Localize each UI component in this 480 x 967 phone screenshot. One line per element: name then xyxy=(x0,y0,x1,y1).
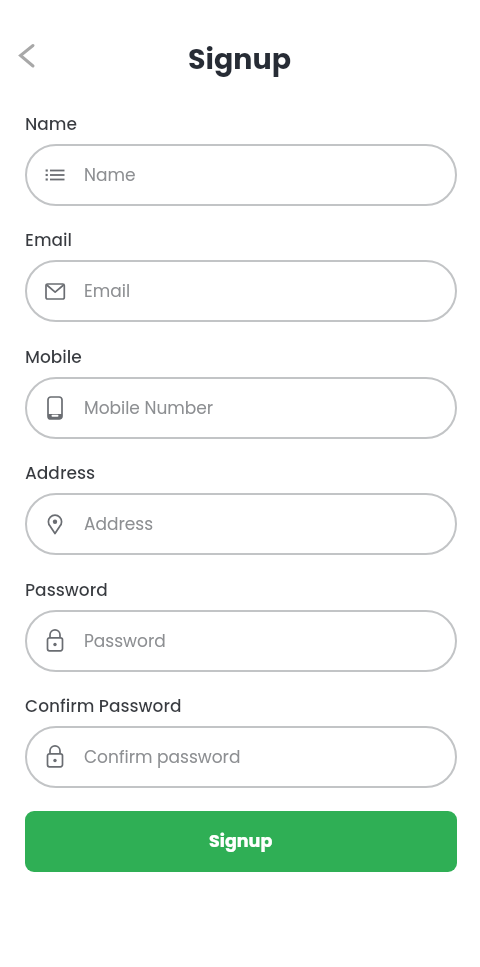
staticText: Name xyxy=(25,112,77,136)
button[interactable]: Password xyxy=(25,610,457,672)
staticText: Confirm Password xyxy=(25,694,182,718)
staticText: Password xyxy=(25,578,108,602)
staticText: Address xyxy=(25,461,96,485)
button[interactable]: Email xyxy=(25,260,457,322)
staticText: Email xyxy=(25,228,73,252)
staticText: Password xyxy=(84,629,166,653)
staticText: Name xyxy=(84,163,136,187)
button[interactable]: Signup xyxy=(25,811,457,872)
staticText: Signup xyxy=(188,39,292,79)
staticText: Mobile Number xyxy=(84,396,214,420)
button[interactable]: Name xyxy=(25,144,457,206)
staticText: Signup xyxy=(209,829,273,854)
staticText: Address xyxy=(84,512,154,536)
button[interactable]: Address xyxy=(25,493,457,555)
button[interactable]: Mobile Number xyxy=(25,377,457,439)
staticText: Mobile xyxy=(25,345,82,369)
staticText: Confirm password xyxy=(84,745,241,769)
button[interactable] xyxy=(10,40,42,72)
staticText: Email xyxy=(84,279,131,303)
button[interactable]: Confirm password xyxy=(25,726,457,788)
